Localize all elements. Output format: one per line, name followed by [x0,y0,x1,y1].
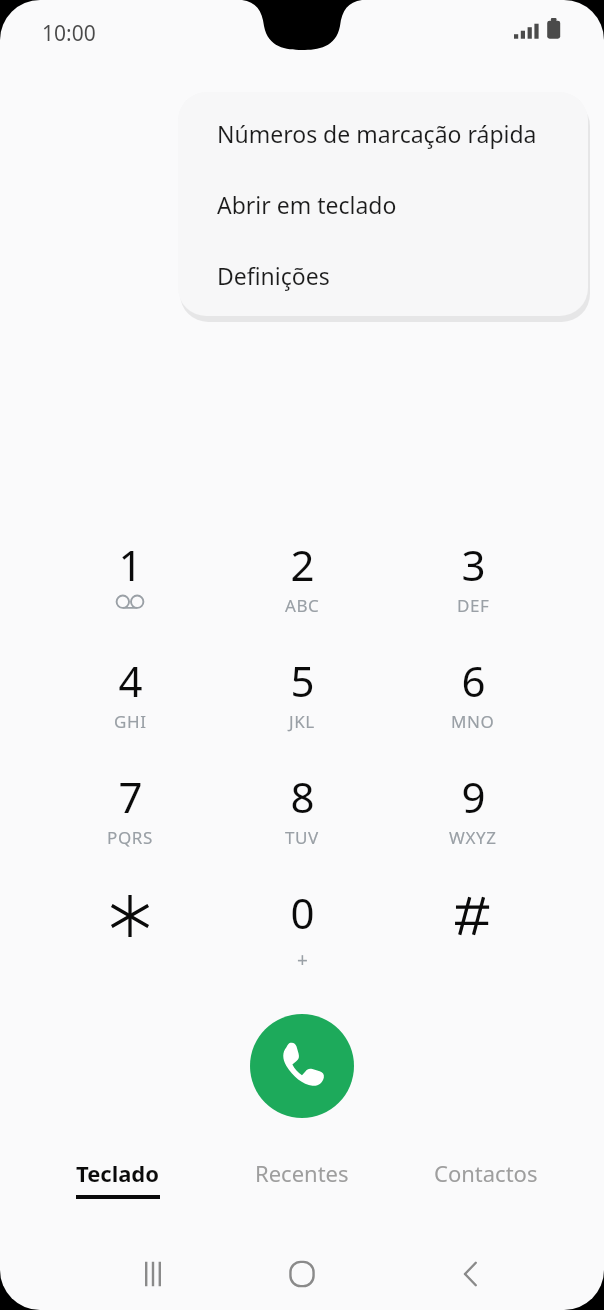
button[interactable]: 6 [408,652,538,756]
staticText: 3 [461,536,486,593]
staticText: JKL [289,710,315,733]
staticText: 10:00 [42,19,96,48]
staticText: 6 [461,652,486,709]
staticText: TUV [285,826,319,849]
staticText: Abrir em teclado [217,189,397,220]
button[interactable] [408,884,538,988]
staticText: ABC [285,594,320,617]
button[interactable]: Call [250,1014,354,1118]
button[interactable]: 9 [408,768,538,872]
staticText: 5 [290,652,315,709]
staticText: + [297,947,308,973]
staticText: MNO [451,710,495,733]
button[interactable]: 2 [237,536,367,640]
button[interactable]: 8 [237,768,367,872]
button[interactable]: Definições [178,246,588,304]
button[interactable]: Teclado [28,1158,208,1220]
staticText: 8 [290,768,315,825]
button[interactable]: 7 [65,768,195,872]
button[interactable]: Home [242,1238,362,1310]
staticText: 1 [118,536,143,593]
button[interactable]: Números de marcação rápida [178,104,588,162]
staticText: DEF [457,594,490,617]
staticText: Teclado [76,1158,160,1188]
staticText: WXYZ [449,826,497,849]
staticText: 2 [290,536,315,593]
button[interactable]: Recentes [212,1158,392,1220]
button[interactable]: 0 [237,884,367,988]
staticText: Contactos [434,1158,538,1188]
staticText: Definições [217,260,330,291]
staticText: 7 [118,768,143,825]
button[interactable]: Back [411,1238,531,1310]
button[interactable]: Abrir em teclado [178,175,588,233]
button[interactable] [65,884,195,988]
staticText: GHI [114,710,147,733]
button[interactable]: 3 [408,536,538,640]
button[interactable]: Recent apps [93,1238,213,1310]
staticText: Recentes [255,1158,349,1188]
staticText: 9 [461,768,486,825]
button[interactable]: Contactos [396,1158,576,1220]
button[interactable]: 1 [65,536,195,640]
button[interactable]: 5 [237,652,367,756]
staticText: Números de marcação rápida [217,118,537,149]
button[interactable]: 4 [65,652,195,756]
staticText: 0 [290,884,315,941]
staticText: 4 [118,652,143,709]
staticText: PQRS [107,826,153,849]
